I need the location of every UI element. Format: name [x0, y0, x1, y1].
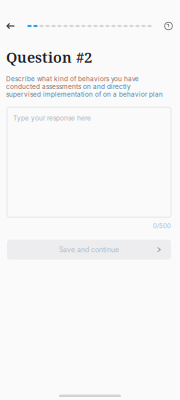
staticText: Describe what kind of behaviors you have… — [6, 75, 163, 98]
button[interactable]: Type your response here — [7, 107, 171, 217]
button[interactable]: Help — [158, 17, 180, 35]
button[interactable]: Save and continue — [7, 240, 171, 260]
button[interactable]: Back — [0, 17, 21, 35]
staticText: 0/500 — [153, 222, 171, 230]
staticText: Question #2 — [6, 47, 92, 67]
staticText: Type your response here — [13, 114, 91, 122]
staticText: Save and continue — [59, 245, 119, 254]
